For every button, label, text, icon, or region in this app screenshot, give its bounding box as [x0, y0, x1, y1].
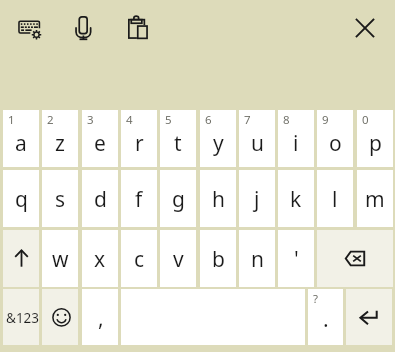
staticText: a	[15, 129, 27, 158]
button[interactable]: ,	[82, 289, 118, 345]
staticText: p	[369, 129, 382, 158]
button[interactable]: k	[278, 170, 314, 227]
button[interactable]: h	[200, 170, 236, 227]
button[interactable]: n	[239, 230, 275, 287]
button[interactable]: Enter	[346, 289, 392, 345]
button[interactable]: Backspace	[317, 230, 393, 287]
staticText: z	[55, 129, 65, 158]
staticText: 6	[205, 112, 212, 128]
button[interactable]: f	[121, 170, 157, 227]
button[interactable]: Close keyboard	[342, 5, 388, 51]
button[interactable]: Voice input	[61, 2, 106, 54]
staticText: ?	[313, 291, 318, 307]
button[interactable]: 9	[317, 110, 353, 167]
button[interactable]: x	[82, 230, 118, 287]
button[interactable]: w	[42, 230, 78, 287]
button[interactable]: Clipboard	[114, 2, 162, 54]
button[interactable]: 0	[357, 110, 393, 167]
button[interactable]: ?	[308, 289, 343, 345]
button[interactable]: d	[82, 170, 118, 227]
staticText: t	[174, 129, 182, 158]
button[interactable]: 3	[82, 110, 118, 167]
staticText: 3	[87, 112, 94, 128]
button[interactable]: &123	[3, 289, 39, 345]
staticText: n	[251, 245, 264, 274]
button[interactable]: 6	[200, 110, 236, 167]
button[interactable]: 7	[239, 110, 275, 167]
staticText: .	[323, 305, 329, 334]
button[interactable]: v	[160, 230, 196, 287]
staticText: i	[293, 129, 299, 158]
staticText: h	[212, 185, 225, 214]
button[interactable]: j	[239, 170, 275, 227]
button[interactable]: c	[121, 230, 157, 287]
button[interactable]: Shift	[3, 230, 39, 287]
button[interactable]: '	[278, 230, 314, 287]
staticText: s	[55, 185, 66, 214]
staticText: q	[15, 185, 28, 214]
button[interactable]: Keyboard settings	[4, 5, 56, 54]
button[interactable]: b	[200, 230, 236, 287]
button[interactable]: 5	[160, 110, 196, 167]
staticText: 2	[47, 112, 54, 128]
staticText: 8	[283, 112, 290, 128]
staticText: 1	[8, 112, 15, 128]
staticText: f	[135, 185, 143, 214]
button[interactable]: s	[42, 170, 78, 227]
button[interactable]: g	[160, 170, 196, 227]
staticText: ,	[98, 304, 104, 333]
staticText: '	[294, 245, 299, 274]
staticText: w	[52, 245, 69, 274]
button[interactable]: q	[3, 170, 39, 227]
staticText: &123	[6, 309, 40, 327]
staticText: m	[365, 185, 385, 214]
staticText: 4	[126, 112, 133, 128]
button[interactable]: Emoji	[42, 289, 78, 345]
staticText: 7	[244, 112, 251, 128]
button[interactable]: l	[317, 170, 353, 227]
staticText: 5	[165, 112, 172, 128]
button[interactable]: 4	[121, 110, 157, 167]
staticText: u	[251, 129, 264, 158]
staticText: j	[254, 185, 260, 214]
staticText: b	[212, 245, 225, 274]
staticText: e	[94, 129, 106, 158]
button[interactable]: 8	[278, 110, 314, 167]
staticText: g	[172, 185, 185, 214]
staticText: o	[329, 129, 342, 158]
staticText: d	[94, 185, 107, 214]
staticText: r	[135, 129, 144, 158]
staticText: 0	[362, 112, 369, 128]
staticText: y	[213, 129, 224, 158]
staticText: v	[173, 245, 184, 274]
button[interactable]: 1	[3, 110, 39, 167]
button[interactable]: m	[357, 170, 393, 227]
staticText: x	[94, 245, 106, 274]
staticText: 9	[322, 112, 329, 128]
staticText: k	[290, 185, 302, 214]
staticText: l	[332, 185, 338, 214]
staticText: c	[134, 245, 145, 274]
button[interactable]: 2	[42, 110, 78, 167]
